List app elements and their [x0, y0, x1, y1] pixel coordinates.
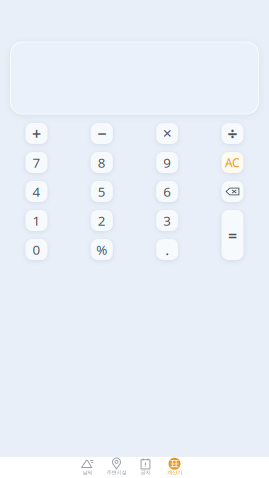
button[interactable]: Backspace — [221, 181, 243, 202]
staticText: ÷ — [227, 122, 237, 145]
button[interactable]: 6 — [156, 181, 178, 202]
staticText: AC — [225, 154, 240, 170]
button[interactable]: − — [91, 123, 113, 144]
staticText: 날씨 — [82, 469, 92, 476]
staticText: + — [32, 123, 41, 144]
staticText: = — [228, 224, 237, 246]
staticText: . — [165, 240, 169, 259]
button[interactable]: 주변시설 — [102, 456, 131, 478]
button[interactable]: 9 — [156, 152, 178, 173]
button[interactable]: 1 — [25, 210, 47, 231]
button[interactable]: ÷ — [221, 123, 243, 144]
staticText: ✕ — [162, 127, 172, 140]
button[interactable]: 날씨 — [73, 456, 102, 478]
staticText: 5 — [98, 183, 106, 200]
button[interactable]: 계산기 — [160, 456, 189, 478]
button[interactable]: 5 — [91, 181, 113, 202]
staticText: 주변시설 — [106, 469, 126, 476]
staticText: 9 — [163, 154, 171, 171]
button[interactable]: 공지 — [131, 456, 160, 478]
button[interactable]: 3 — [156, 210, 178, 231]
button[interactable]: % — [91, 239, 113, 260]
staticText: 3 — [163, 212, 171, 229]
button[interactable]: 7 — [25, 152, 47, 173]
button[interactable]: 2 — [91, 210, 113, 231]
button[interactable]: . — [156, 239, 178, 260]
button[interactable]: 8 — [91, 152, 113, 173]
staticText: − — [97, 123, 106, 144]
staticText: 7 — [32, 154, 40, 171]
staticText: 4 — [32, 183, 40, 200]
button[interactable]: 0 — [25, 239, 47, 260]
staticText: % — [96, 241, 107, 258]
staticText: 6 — [163, 183, 171, 200]
button[interactable]: ✕ — [156, 123, 178, 144]
staticText: 공지 — [140, 469, 150, 476]
staticText: 계산기 — [167, 469, 182, 476]
button[interactable]: AC — [221, 152, 243, 173]
staticText: 0 — [32, 241, 40, 258]
staticText: 1 — [32, 212, 40, 229]
staticText: 8 — [98, 154, 106, 171]
button[interactable]: = — [221, 210, 243, 260]
staticText: 2 — [98, 212, 106, 229]
button[interactable]: 4 — [25, 181, 47, 202]
button[interactable]: + — [25, 123, 47, 144]
